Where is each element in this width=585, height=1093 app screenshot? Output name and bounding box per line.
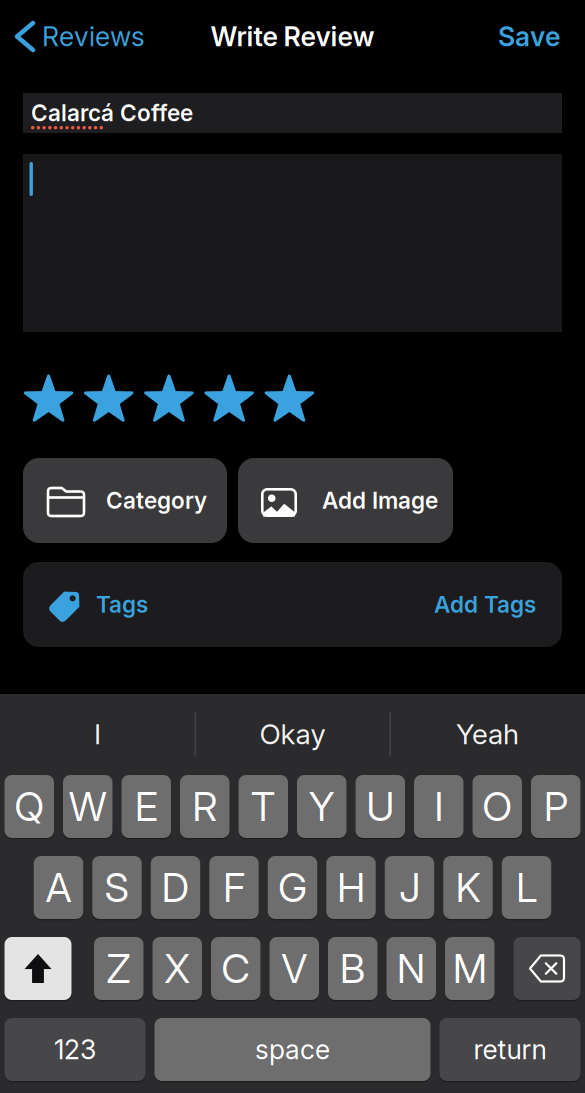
button[interactable]: Shift (4, 937, 71, 1001)
staticText: C (221, 944, 250, 993)
staticText: Save (498, 20, 560, 53)
staticText: Okay (259, 717, 325, 751)
button[interactable]: Review text (23, 154, 562, 332)
button[interactable]: Z (94, 937, 143, 1001)
button[interactable]: Star 1 (25, 376, 72, 422)
button[interactable]: S (92, 856, 142, 920)
staticText: Add Tags (434, 591, 536, 618)
button[interactable]: Y (297, 775, 346, 839)
button[interactable]: M (445, 937, 494, 1001)
button[interactable]: 123 (4, 1018, 145, 1082)
staticText: Reviews (42, 20, 145, 53)
staticText: space (255, 1033, 330, 1066)
button[interactable]: T (238, 775, 288, 839)
button[interactable]: Star 4 (206, 376, 252, 422)
staticText: K (455, 863, 480, 912)
staticText: E (135, 782, 158, 831)
button[interactable]: U (355, 775, 405, 839)
button[interactable]: Okay (207, 714, 377, 754)
button[interactable]: Q (4, 775, 54, 839)
staticText: 123 (54, 1033, 96, 1066)
staticText: T (251, 782, 276, 831)
button[interactable]: W (63, 775, 112, 839)
button[interactable]: K (443, 856, 493, 920)
button[interactable]: E (121, 775, 171, 839)
staticText: R (192, 782, 217, 831)
staticText: J (399, 863, 420, 912)
staticText: S (104, 863, 129, 912)
staticText: Calarcá Coffee (31, 99, 193, 127)
staticText: X (164, 944, 190, 993)
button[interactable]: V (269, 937, 319, 1001)
button[interactable]: return (439, 1018, 580, 1082)
button[interactable]: Delete (513, 937, 580, 1001)
button[interactable]: C (211, 937, 260, 1001)
staticText: U (366, 782, 394, 831)
button[interactable]: B (328, 937, 377, 1001)
button[interactable]: I (414, 775, 463, 839)
staticText: L (516, 863, 537, 912)
button[interactable]: N (386, 937, 436, 1001)
staticText: Y (309, 782, 335, 831)
button[interactable]: Tags (23, 562, 562, 647)
staticText: Q (14, 782, 44, 831)
staticText: D (161, 863, 189, 912)
staticText: H (337, 863, 365, 912)
staticText: Yeah (456, 717, 519, 751)
button[interactable]: Add Image (238, 458, 453, 543)
button[interactable]: Yeah (402, 714, 572, 754)
staticText: Add Image (322, 487, 438, 514)
staticText: M (453, 944, 487, 993)
button[interactable]: Calarcá Coffee (23, 93, 562, 133)
button[interactable]: R (180, 775, 229, 839)
button[interactable]: Back to Reviews (15, 20, 155, 53)
button[interactable]: A (34, 856, 83, 920)
staticText: Category (106, 487, 207, 514)
button[interactable]: Star 3 (146, 376, 192, 422)
staticText: return (473, 1033, 546, 1066)
staticText: P (544, 782, 568, 831)
button[interactable]: Star 5 (266, 376, 313, 422)
button[interactable]: I (12, 714, 182, 754)
staticText: I (94, 717, 101, 751)
button[interactable]: Star 2 (85, 376, 132, 422)
staticText: Z (106, 944, 131, 993)
staticText: I (434, 782, 443, 831)
button[interactable]: G (268, 856, 317, 920)
button[interactable]: H (326, 856, 376, 920)
button[interactable]: space (154, 1018, 430, 1082)
staticText: F (223, 863, 245, 912)
button[interactable]: D (151, 856, 200, 920)
button[interactable]: Category (23, 458, 227, 543)
staticText: G (278, 863, 307, 912)
staticText: Write Review (210, 20, 374, 53)
staticText: N (397, 944, 426, 993)
staticText: Tags (96, 591, 148, 618)
button[interactable]: Save (460, 20, 560, 53)
staticText: O (482, 782, 512, 831)
staticText: W (69, 782, 107, 831)
button[interactable]: X (152, 937, 202, 1001)
button[interactable]: J (385, 856, 434, 920)
button[interactable]: O (472, 775, 522, 839)
staticText: V (281, 944, 307, 993)
button[interactable]: P (531, 775, 580, 839)
button[interactable]: F (209, 856, 259, 920)
staticText: A (45, 863, 71, 912)
staticText: B (340, 944, 366, 993)
button[interactable]: L (502, 856, 551, 920)
